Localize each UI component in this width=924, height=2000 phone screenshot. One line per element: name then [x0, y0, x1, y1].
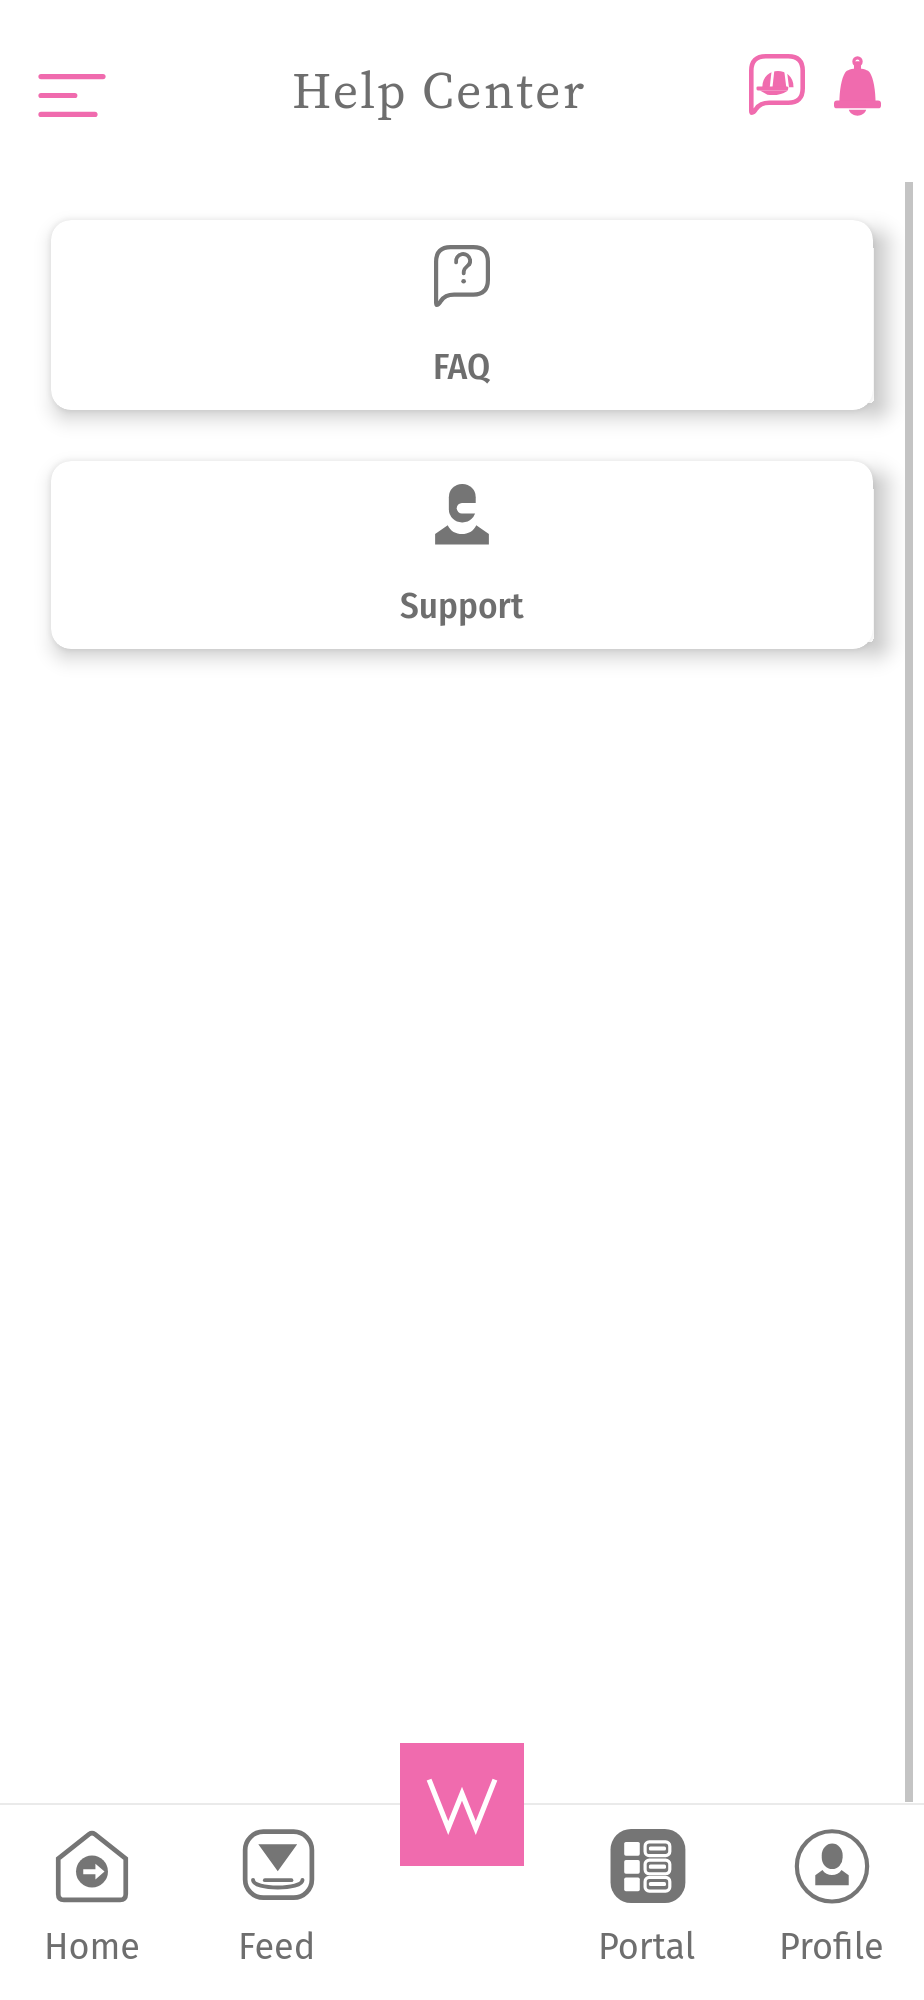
button[interactable]: Profile — [739, 1805, 924, 2000]
button[interactable]: Messages — [731, 38, 823, 130]
button[interactable]: Feed — [184, 1805, 369, 2000]
staticText: Help Center — [292, 56, 587, 125]
staticText: Profile — [779, 1925, 884, 1968]
button[interactable]: Support — [51, 461, 873, 649]
staticText: Home — [44, 1925, 140, 1968]
button[interactable]: Portal — [554, 1805, 739, 2000]
button[interactable]: Home — [0, 1805, 184, 2000]
button[interactable]: FAQ — [51, 220, 873, 410]
staticText: Support — [400, 583, 524, 627]
staticText: Portal — [598, 1925, 696, 1968]
staticText: FAQ — [433, 344, 491, 388]
button[interactable]: Notifications — [811, 40, 903, 132]
button[interactable]: Menu — [3, 50, 141, 142]
button[interactable]: Create post — [400, 1743, 524, 1866]
staticText: Feed — [238, 1925, 316, 1968]
